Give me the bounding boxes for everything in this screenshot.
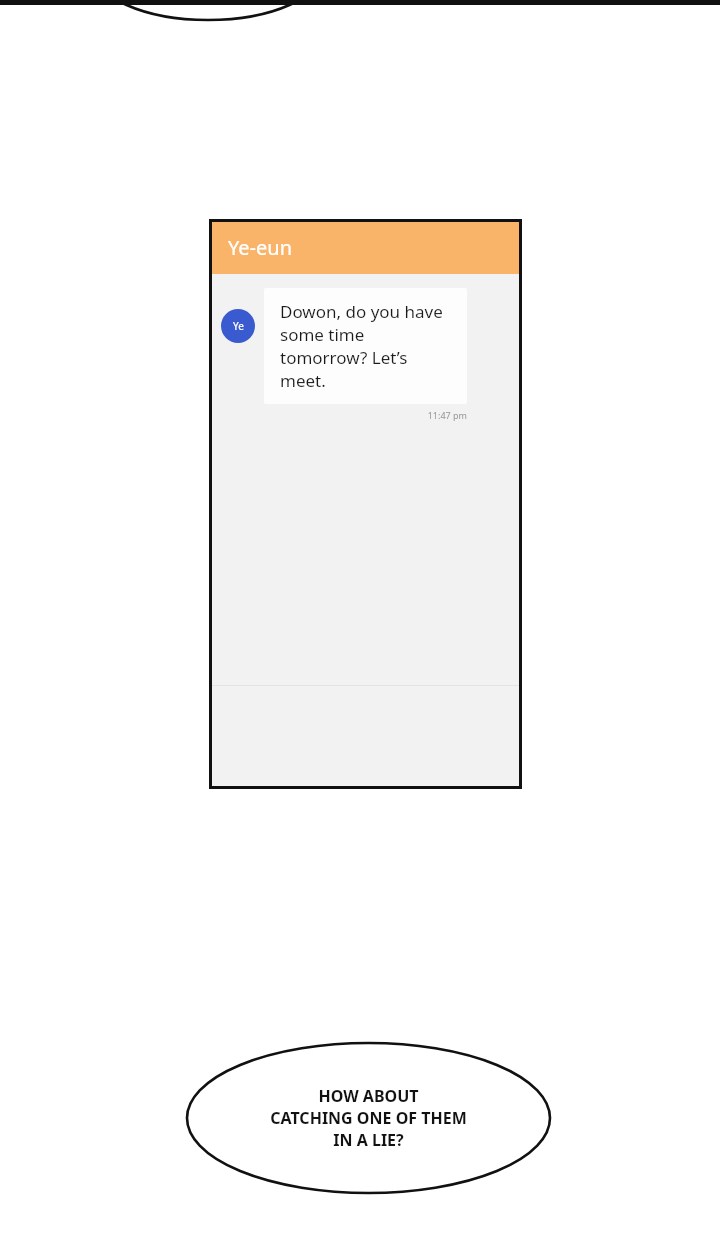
staticText: HOW ABOUT — [318, 1085, 419, 1107]
staticText: Ye-eun — [228, 234, 293, 261]
staticText: CATCHING ONE OF THEM — [270, 1107, 467, 1129]
staticText: IN A LIE? — [333, 1129, 404, 1151]
other: Ye-eun avatar — [221, 309, 255, 343]
staticText: 11:47 pm — [264, 409, 467, 421]
staticText: Dowon, do you have some time tomorrow? L… — [280, 300, 451, 392]
staticText: Ye — [233, 319, 244, 333]
button[interactable]: Ye-eun — [212, 222, 519, 274]
button[interactable]: Ye-eun avatar — [221, 288, 509, 421]
